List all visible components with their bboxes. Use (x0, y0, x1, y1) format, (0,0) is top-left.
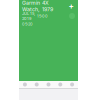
staticText: 05:20 (22, 22, 33, 26)
button[interactable]: Add (67, 2, 75, 10)
staticText: + (68, 1, 73, 11)
staticText: 15:00 (37, 14, 48, 18)
staticText: Garmin 4X Watch, 1979 (22, 0, 53, 12)
staticText: JUL 15, 2019 (22, 11, 35, 21)
